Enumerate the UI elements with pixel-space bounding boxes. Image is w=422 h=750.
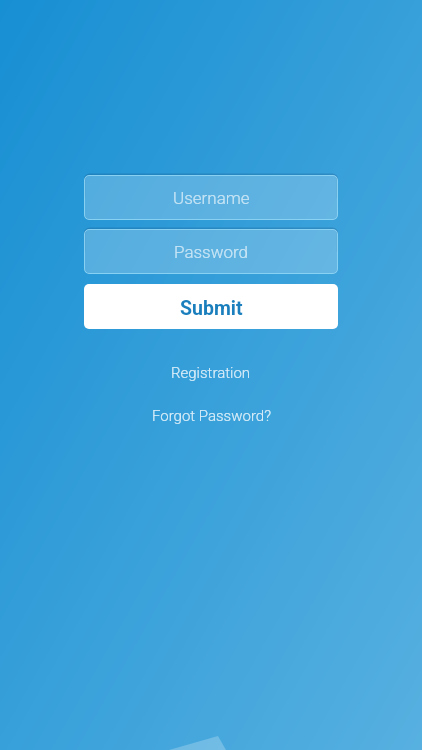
button[interactable]: Registration bbox=[161, 360, 261, 386]
staticText: Password bbox=[174, 242, 249, 262]
button[interactable]: Forgot Password? bbox=[142, 403, 281, 429]
staticText: Registration bbox=[171, 364, 251, 382]
button[interactable]: Username bbox=[84, 175, 338, 220]
staticText: Submit bbox=[180, 297, 243, 320]
staticText: Forgot Password? bbox=[152, 407, 271, 425]
button[interactable]: Submit bbox=[84, 284, 338, 329]
staticText: Username bbox=[173, 188, 250, 208]
button[interactable]: Password bbox=[84, 229, 338, 274]
